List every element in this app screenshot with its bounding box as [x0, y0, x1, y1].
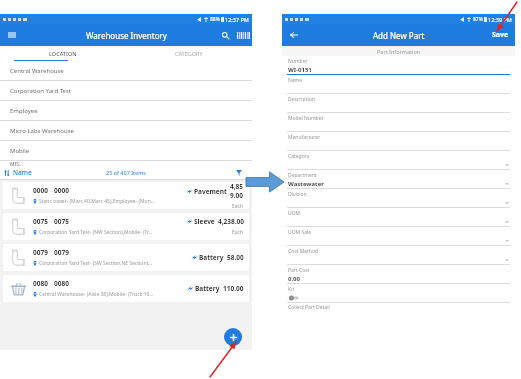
button[interactable]: Department: [282, 170, 515, 189]
staticText: Collect Part Detail: [288, 304, 330, 311]
button[interactable]: Category: [282, 151, 515, 170]
staticText: Mobile: [10, 147, 30, 155]
button[interactable]: Save: [492, 30, 509, 40]
button[interactable]: Add part: [224, 328, 242, 346]
staticText: Number: [288, 58, 308, 65]
staticText: Sleeve: [194, 217, 215, 226]
staticText: Name: [13, 168, 32, 177]
button[interactable]: 0075: [3, 213, 249, 240]
staticText: WI-0151: [288, 66, 312, 74]
staticText: 12:39 PM: [488, 16, 512, 23]
staticText: 4,859.00: [230, 182, 244, 200]
staticText: 0075: [54, 217, 69, 226]
staticText: Central Warehouse: [10, 67, 64, 75]
button[interactable]: Filter: [234, 168, 244, 178]
staticText: 0079: [33, 248, 48, 257]
staticText: Corporation Yard Test: [10, 87, 71, 95]
button[interactable]: Part Cost: [282, 265, 515, 284]
staticText: UOM: [288, 210, 301, 217]
button[interactable]: CATEGORY: [126, 46, 252, 60]
staticText: 0.00: [288, 275, 300, 283]
staticText: Division: [288, 191, 307, 198]
button[interactable]: Search: [219, 29, 231, 41]
staticText: 58.00: [227, 253, 244, 262]
button[interactable]: Kit: [282, 284, 515, 303]
staticText: 0000: [33, 186, 48, 195]
staticText: Part Information: [377, 48, 421, 55]
button[interactable]: Employee: [0, 101, 252, 121]
button[interactable]: 0000: [3, 182, 249, 209]
staticText: Name: [288, 77, 303, 84]
staticText: Corporation Yard Test- (NW Section),Mobi…: [39, 229, 153, 236]
staticText: Kit: [288, 286, 295, 293]
button[interactable]: Name: [4, 168, 32, 177]
staticText: Wastewater: [288, 180, 324, 188]
staticText: LOCATION: [49, 50, 77, 57]
staticText: Part Cost: [288, 267, 310, 274]
staticText: 87%: [473, 16, 483, 23]
button[interactable]: Micro Labs Warehouse: [0, 121, 252, 141]
staticText: Corporation Yard Test- (SW Section,NE Se…: [39, 260, 153, 267]
staticText: Model Number: [288, 115, 324, 122]
button[interactable]: Scan barcode: [235, 29, 247, 41]
staticText: Category: [288, 153, 310, 160]
staticText: Employee: [10, 107, 38, 115]
button[interactable]: Number: [282, 56, 515, 75]
staticText: Manufacturer: [288, 134, 321, 141]
staticText: Department: [288, 172, 317, 179]
staticText: Each: [232, 203, 244, 209]
staticText: 4,238.00: [218, 217, 244, 226]
staticText: Description: [288, 96, 315, 103]
staticText: Each: [232, 229, 244, 236]
staticText: 12:37 PM: [225, 16, 249, 23]
staticText: 25 of 407 Items: [106, 169, 146, 176]
staticText: 88%: [210, 16, 220, 23]
staticText: Cost Method: [288, 248, 319, 255]
staticText: 0080: [54, 279, 69, 288]
staticText: UOM Sale: [288, 229, 312, 236]
staticText: Micro Labs Warehouse: [10, 127, 74, 135]
button[interactable]: Name: [282, 75, 515, 94]
staticText: MIS...: [10, 161, 23, 166]
staticText: CATEGORY: [175, 50, 203, 57]
button[interactable]: Cost Method: [282, 246, 515, 265]
button[interactable]: Back: [288, 29, 300, 41]
staticText: Save: [492, 30, 509, 40]
staticText: Central Warehouse- (Aisle 38),Mobile- (T…: [39, 291, 154, 298]
button[interactable]: UOM Sale: [282, 227, 515, 246]
button[interactable]: Mobile: [0, 141, 252, 161]
button[interactable]: LOCATION: [0, 46, 126, 60]
button[interactable]: 0080: [3, 275, 249, 302]
button[interactable]: Description: [282, 94, 515, 113]
staticText: 0080: [33, 279, 48, 288]
staticText: Pavement: [194, 187, 227, 196]
staticText: 0075: [33, 217, 48, 226]
staticText: Stanc tower- (Marc 40,Marc 45),Employee-…: [39, 198, 155, 205]
staticText: Add New Part: [373, 30, 425, 41]
button[interactable]: 0079: [3, 244, 249, 271]
staticText: Warehouse Inventory: [86, 30, 167, 41]
button[interactable]: Central Warehouse: [0, 61, 252, 81]
staticText: Battery: [199, 253, 224, 262]
staticText: 0079: [54, 248, 69, 257]
button[interactable]: Model Number: [282, 113, 515, 132]
button[interactable]: Manufacturer: [282, 132, 515, 151]
staticText: 0000: [54, 186, 69, 195]
button[interactable]: Division: [282, 189, 515, 208]
button[interactable]: Menu: [6, 29, 18, 41]
staticText: 110.00: [223, 284, 244, 293]
button[interactable]: Corporation Yard Test: [0, 81, 252, 101]
button[interactable]: UOM: [282, 208, 515, 227]
staticText: Battery: [195, 284, 220, 293]
